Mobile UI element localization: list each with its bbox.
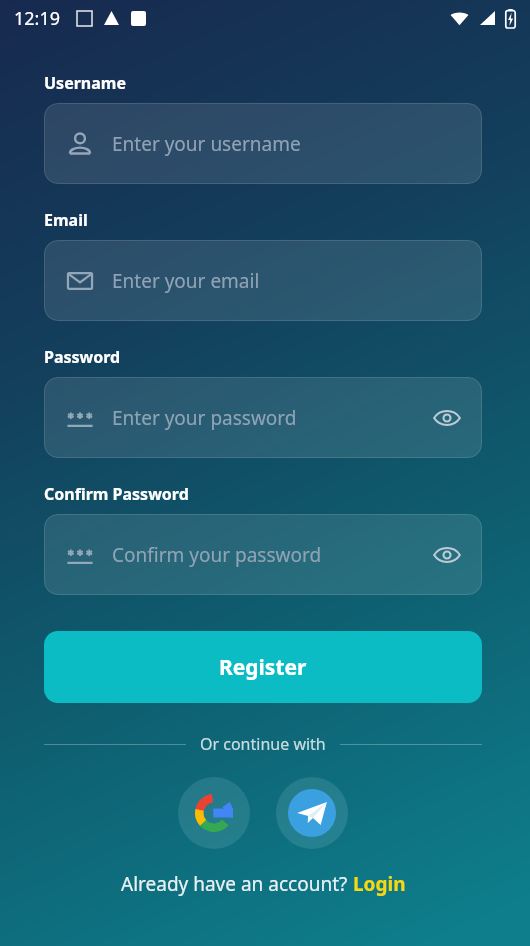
staticText: Enter your email <box>112 268 464 294</box>
button[interactable]: Show password <box>430 401 464 435</box>
button[interactable]: Username <box>44 103 482 184</box>
staticText: Confirm Password <box>44 483 189 505</box>
staticText: Or continue with <box>200 733 326 755</box>
button[interactable]: Already have an account? <box>44 871 482 897</box>
button[interactable]: Password <box>44 377 482 458</box>
staticText: 12:19 <box>14 6 61 31</box>
staticText: Register <box>219 653 307 682</box>
button[interactable]: Continue with Telegram <box>276 777 348 849</box>
staticText: Login <box>353 871 406 897</box>
staticText: Confirm your password <box>112 542 430 568</box>
button[interactable]: Show password <box>430 538 464 572</box>
staticText: Username <box>44 72 126 94</box>
staticText: Email <box>44 209 88 231</box>
button[interactable]: Confirm password <box>44 514 482 595</box>
button[interactable]: Email <box>44 240 482 321</box>
staticText: Enter your username <box>112 131 464 157</box>
staticText: Enter your password <box>112 405 430 431</box>
button[interactable]: Continue with Google <box>178 777 250 849</box>
staticText: Already have an account? <box>121 871 353 897</box>
button[interactable]: Register <box>44 631 482 703</box>
staticText: Password <box>44 346 121 368</box>
